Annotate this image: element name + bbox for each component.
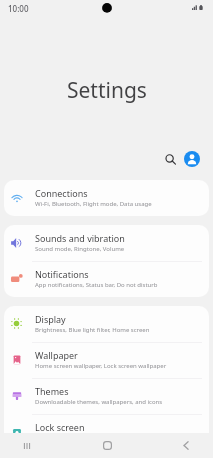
staticText: Screen lock type, Clock style: [35, 434, 114, 442]
staticText: Sound mode, Ringtone, Volume: [35, 245, 125, 253]
staticText: Home screen wallpaper, Lock screen wallp…: [35, 362, 167, 370]
button[interactable]: Sounds and vibration: [4, 225, 209, 261]
button[interactable]: Back: [173, 433, 199, 458]
button[interactable]: Home: [94, 433, 120, 458]
button[interactable]: Search: [160, 149, 180, 169]
staticText: Sounds and vibration: [35, 232, 125, 244]
staticText: Settings: [67, 76, 147, 105]
staticText: 10:00: [8, 3, 29, 14]
staticText: Themes: [35, 385, 69, 397]
staticText: Connections: [35, 187, 88, 199]
button[interactable]: Notifications: [4, 261, 209, 297]
button[interactable]: Connections: [4, 180, 209, 216]
staticText: App notifications, Status bar, Do not di…: [35, 281, 158, 289]
staticText: Display: [35, 313, 66, 325]
staticText: Downloadable themes, wallpapers, and ico…: [35, 398, 163, 406]
staticText: Wallpaper: [35, 349, 78, 361]
staticText: Wi-Fi, Bluetooth, Flight mode, Data usag…: [35, 200, 152, 208]
button[interactable]: Account: [182, 149, 202, 169]
staticText: Notifications: [35, 268, 89, 280]
button[interactable]: Lock screen: [4, 414, 209, 450]
button[interactable]: Recents: [14, 433, 40, 458]
staticText: Lock screen: [35, 421, 85, 433]
staticText: Brightness, Blue light filter, Home scre…: [35, 326, 150, 334]
button[interactable]: Wallpaper: [4, 342, 209, 378]
button[interactable]: Display: [4, 306, 209, 342]
button[interactable]: Themes: [4, 378, 209, 414]
